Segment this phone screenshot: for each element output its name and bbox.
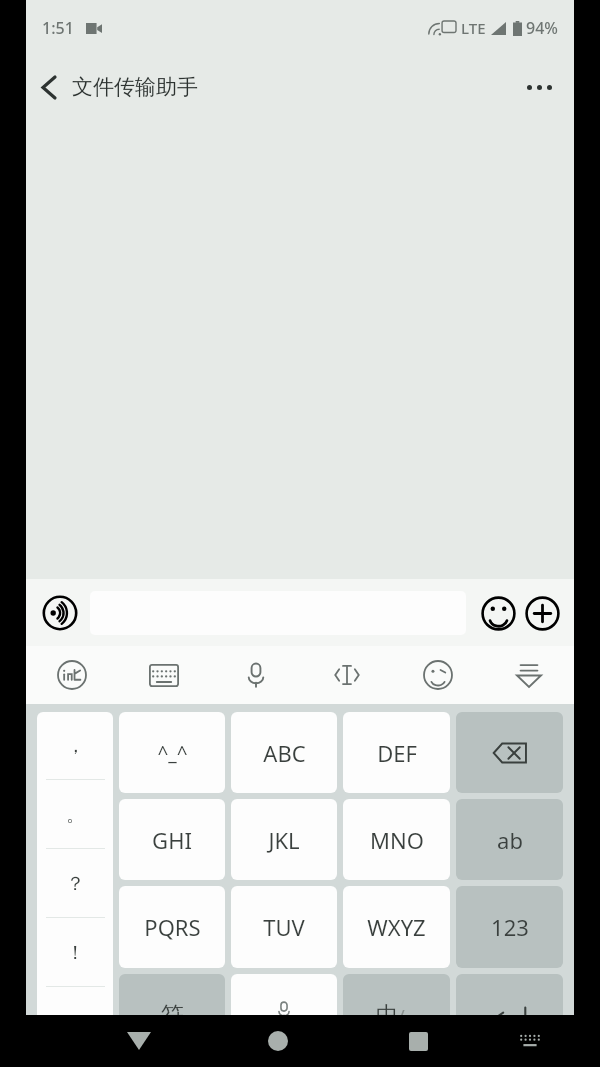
- staticText: 文件传输助手: [72, 74, 198, 100]
- staticText: …: [67, 1009, 83, 1035]
- staticText: ？: [66, 872, 85, 896]
- staticText: 。: [66, 803, 85, 827]
- button[interactable]: ABC: [231, 712, 337, 793]
- button[interactable]: Hide keyboard: [483, 646, 574, 704]
- button[interactable]: …: [37, 987, 113, 1056]
- button[interactable]: 中: [343, 974, 450, 1056]
- button[interactable]: ？: [37, 849, 113, 918]
- button[interactable]: ^_^: [119, 712, 225, 793]
- button[interactable]: More options: [516, 64, 562, 110]
- button[interactable]: Stickers: [392, 646, 483, 704]
- button[interactable]: ！: [37, 918, 113, 987]
- staticText: /: [398, 1004, 405, 1029]
- button[interactable]: TUV: [231, 886, 337, 968]
- button[interactable]: Text editing: [301, 646, 392, 704]
- staticText: ，: [66, 734, 85, 758]
- button[interactable]: Show keyboard: [495, 1015, 565, 1067]
- button[interactable]: Enter: [456, 974, 563, 1056]
- button[interactable]: ab: [456, 799, 563, 880]
- button[interactable]: Voice input: [36, 589, 84, 637]
- staticText: MNO: [370, 825, 424, 855]
- staticText: JKL: [268, 825, 300, 855]
- staticText: WXYZ: [367, 912, 426, 942]
- staticText: ABC: [263, 738, 306, 768]
- button[interactable]: WXYZ: [343, 886, 450, 968]
- staticText: ^_^: [157, 740, 188, 766]
- button[interactable]: Keyboard layout: [118, 646, 210, 704]
- button[interactable]: Recent apps: [383, 1015, 453, 1067]
- button[interactable]: MNO: [343, 799, 450, 880]
- staticText: 符: [161, 1001, 184, 1030]
- staticText: 中: [376, 1001, 398, 1029]
- staticText: DEF: [377, 738, 417, 768]
- staticText: TUV: [263, 912, 305, 942]
- button[interactable]: GHI: [119, 799, 225, 880]
- staticText: 英: [405, 1013, 418, 1029]
- button[interactable]: Voice: [210, 646, 301, 704]
- button[interactable]: PQRS: [119, 886, 225, 968]
- button[interactable]: ，: [37, 712, 113, 780]
- button[interactable]: Space: [231, 974, 337, 1056]
- staticText: 94%: [526, 17, 558, 39]
- staticText: 123: [491, 912, 529, 942]
- button[interactable]: Back: [26, 64, 72, 110]
- button[interactable]: Home: [243, 1015, 313, 1067]
- button[interactable]: Emoji: [476, 591, 520, 635]
- button[interactable]: More functions: [520, 591, 564, 635]
- button[interactable]: 123: [456, 886, 563, 968]
- staticText: PQRS: [144, 912, 201, 942]
- button[interactable]: 符: [119, 974, 225, 1056]
- staticText: ab: [497, 825, 523, 855]
- button[interactable]: 。: [37, 780, 113, 849]
- staticText: 1:51: [42, 17, 74, 39]
- button[interactable]: Delete: [456, 712, 563, 793]
- button[interactable]: JKL: [231, 799, 337, 880]
- button[interactable]: Input method: [26, 646, 118, 704]
- staticText: LTE: [461, 18, 486, 38]
- button[interactable]: Back: [104, 1015, 173, 1067]
- staticText: GHI: [152, 825, 192, 855]
- button[interactable]: DEF: [343, 712, 450, 793]
- staticText: ！: [66, 941, 85, 965]
